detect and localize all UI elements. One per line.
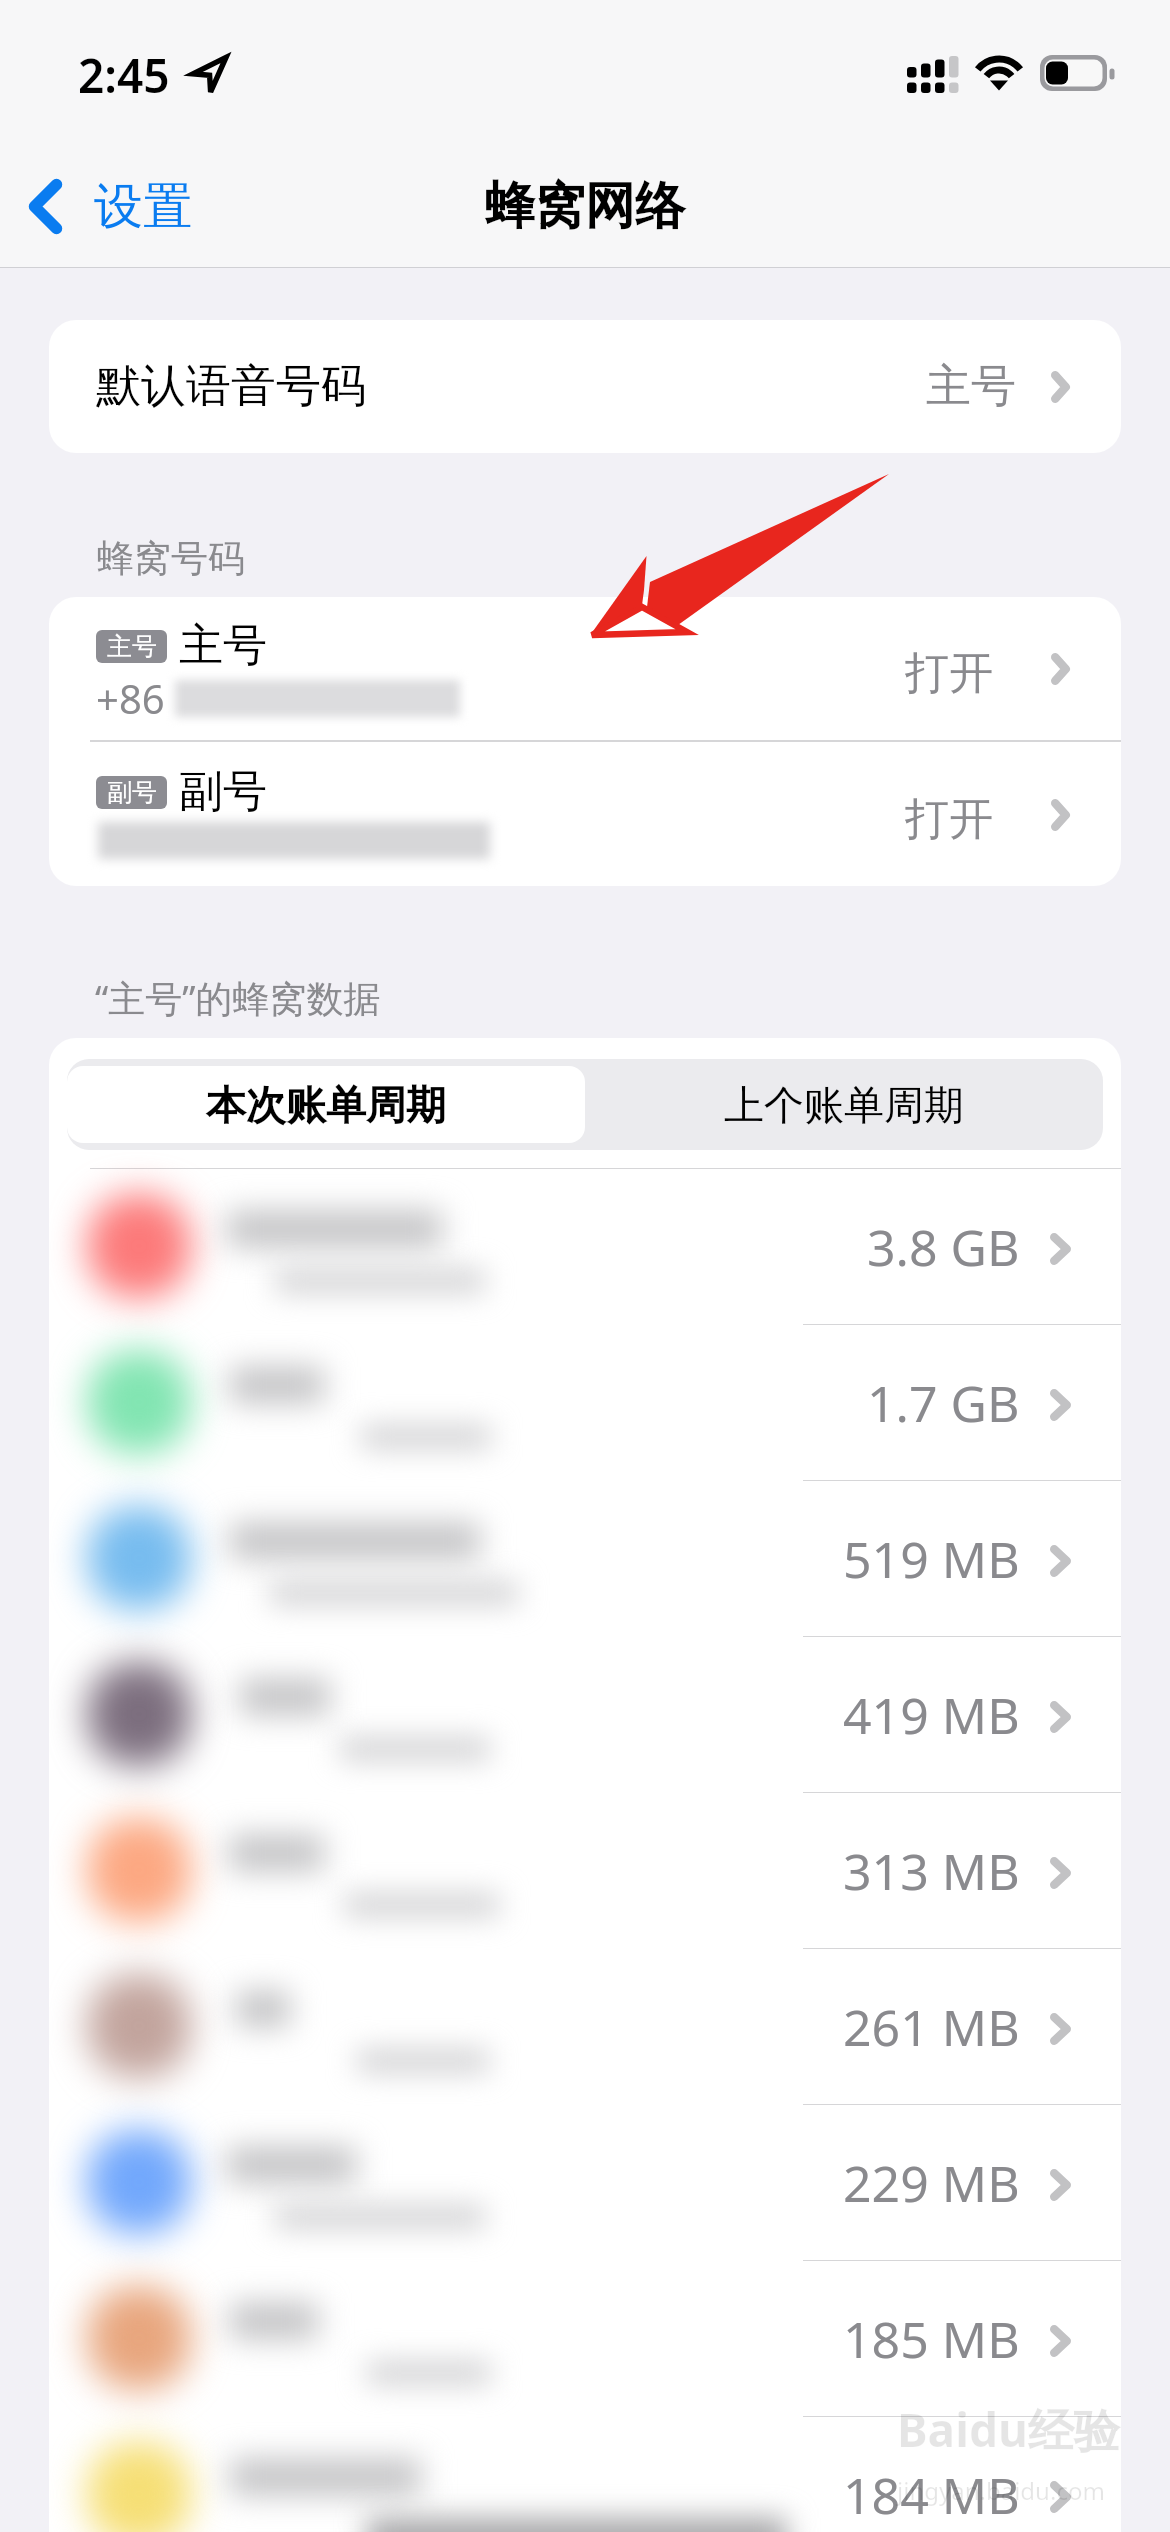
staticText: 261 MB: [843, 1993, 1020, 2061]
other: Open: [1050, 2481, 1071, 2513]
button[interactable]: 419 MB: [49, 1637, 1121, 1792]
button[interactable]: 229 MB: [49, 2105, 1121, 2260]
other: Open: [1051, 799, 1070, 831]
staticText: 设置: [94, 176, 192, 238]
staticText: 上个账单周期: [724, 1080, 964, 1130]
button[interactable]: 1.7 GB: [49, 1325, 1121, 1480]
button[interactable]: 184 MB: [49, 2417, 1121, 2532]
button[interactable]: Back: [0, 157, 216, 251]
staticText: 184 MB: [843, 2461, 1020, 2529]
other: Open: [1051, 653, 1070, 685]
staticText: 副号: [179, 764, 267, 819]
staticText: 3.8 GB: [867, 1213, 1020, 1281]
button[interactable]: 主号: [49, 597, 1121, 740]
staticText: “主号”的蜂窝数据: [95, 972, 381, 1023]
staticText: Baidu经验: [897, 2398, 1120, 2461]
button[interactable]: 上个账单周期: [585, 1059, 1103, 1150]
other: Open: [1050, 2013, 1071, 2045]
other: Back: [29, 178, 62, 240]
other: Open: [1050, 1857, 1071, 1889]
staticText: 1.7 GB: [867, 1369, 1020, 1437]
staticText: jingyan.baidu.com: [897, 2474, 1105, 2507]
staticText: 本次账单周期: [206, 1080, 446, 1130]
staticText: +86: [96, 671, 165, 725]
staticText: 默认语音号码: [96, 358, 366, 415]
other: Open: [1050, 1545, 1071, 1577]
staticText: 蜂窝号码: [97, 535, 245, 582]
button[interactable]: 本次账单周期: [67, 1066, 585, 1143]
staticText: 副号: [107, 777, 157, 808]
staticText: 打开: [905, 792, 993, 847]
button[interactable]: 261 MB: [49, 1949, 1121, 2104]
staticText: 519 MB: [843, 1525, 1020, 1593]
staticText: 185 MB: [843, 2305, 1020, 2373]
staticText: 2:45: [78, 44, 170, 107]
button[interactable]: 副号: [49, 742, 1121, 886]
staticText: 313 MB: [843, 1837, 1020, 1905]
button[interactable]: 519 MB: [49, 1481, 1121, 1636]
other: Open: [1051, 371, 1070, 403]
other: Open: [1050, 1701, 1071, 1733]
other: Open: [1050, 2325, 1071, 2357]
other: Open: [1050, 2169, 1071, 2201]
other: Open: [1050, 1233, 1071, 1265]
other: Open: [1050, 1389, 1071, 1421]
button[interactable]: 默认语音号码: [49, 320, 1121, 453]
staticText: 蜂窝网络: [485, 175, 685, 238]
staticText: 主号: [926, 358, 1016, 415]
staticText: 主号: [107, 631, 157, 662]
button[interactable]: 185 MB: [49, 2261, 1121, 2416]
staticText: 229 MB: [843, 2149, 1020, 2217]
button[interactable]: 313 MB: [49, 1793, 1121, 1948]
staticText: 打开: [905, 646, 993, 701]
staticText: 主号: [179, 618, 267, 673]
staticText: 419 MB: [843, 1681, 1020, 1749]
button[interactable]: 3.8 GB: [49, 1169, 1121, 1324]
